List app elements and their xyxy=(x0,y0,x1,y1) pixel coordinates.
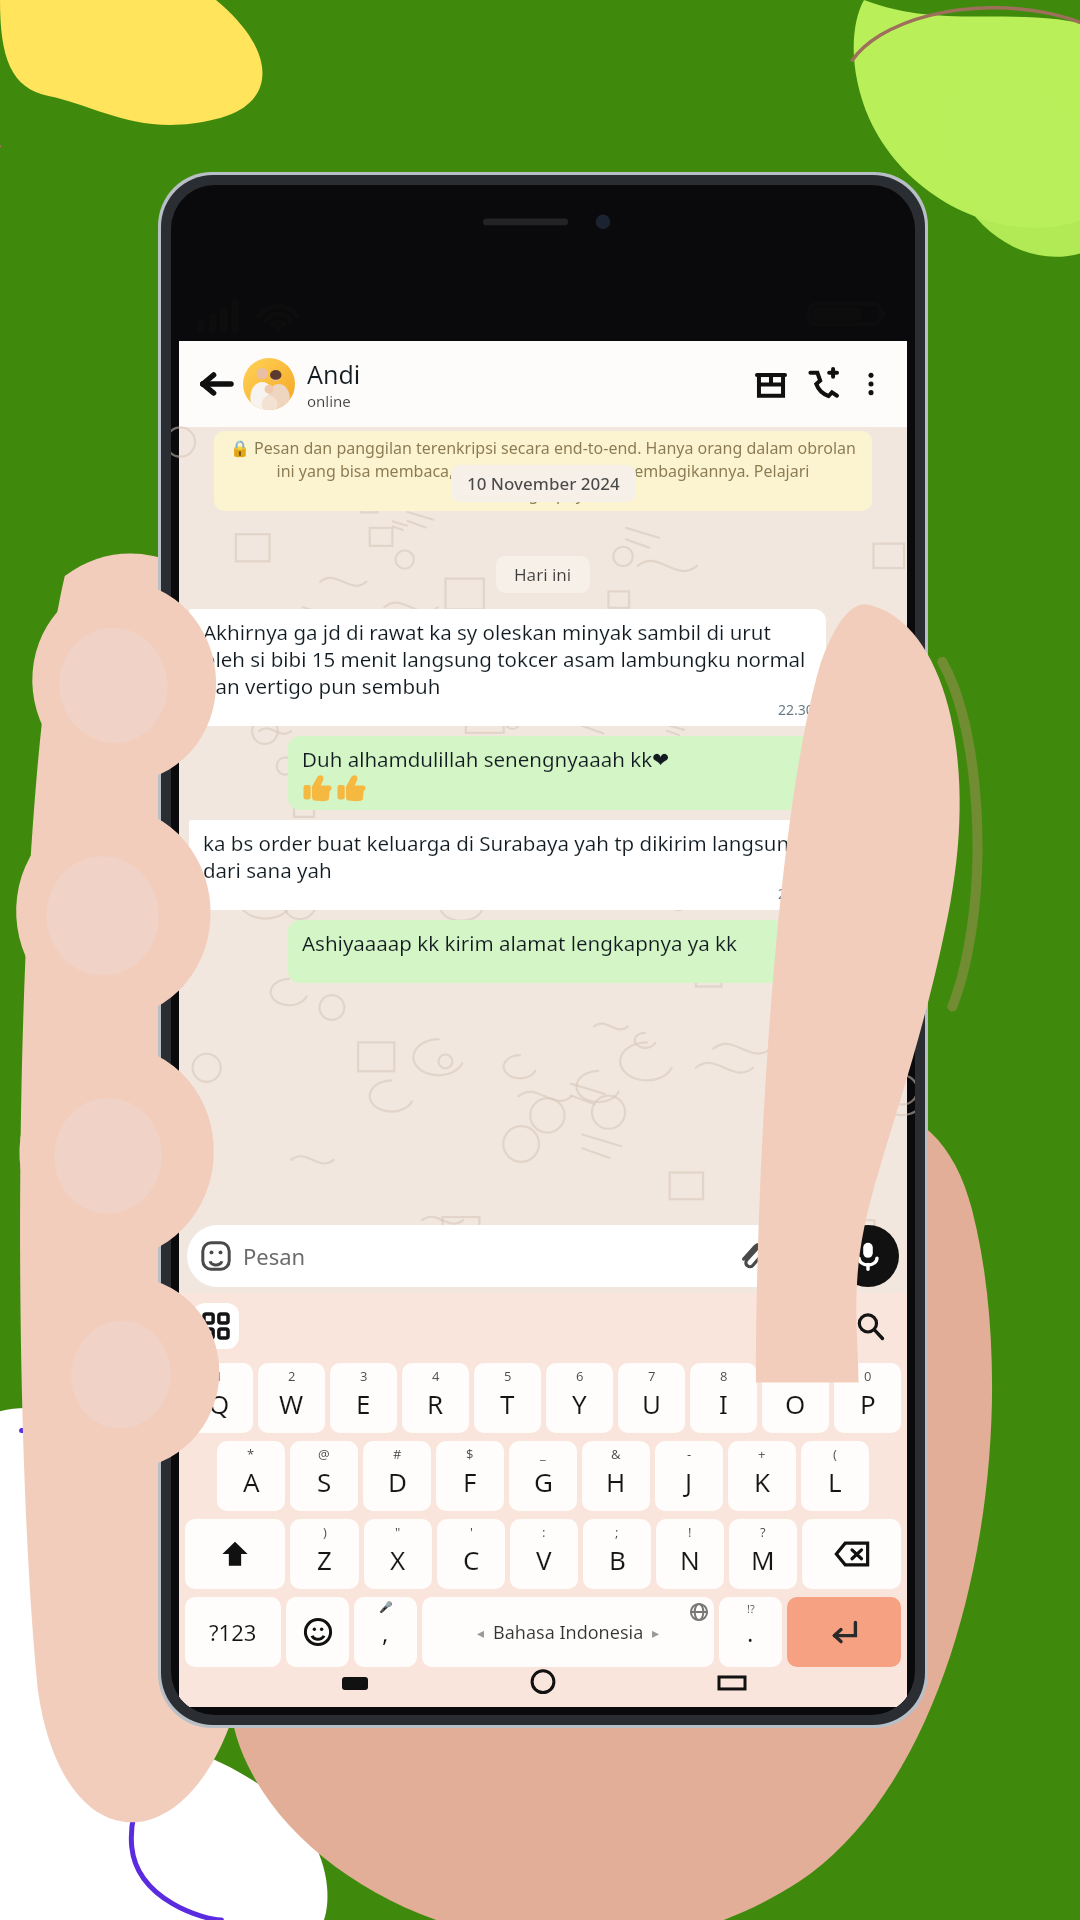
staticText: - xyxy=(687,1445,692,1463)
button[interactable]: Voice message xyxy=(837,1225,899,1287)
button[interactable]: 8 xyxy=(690,1363,757,1433)
button[interactable]: ; xyxy=(583,1519,651,1589)
staticText: 8 xyxy=(720,1367,728,1385)
staticText: F xyxy=(463,1464,477,1499)
staticText: 1 xyxy=(215,1367,223,1385)
staticText: Y xyxy=(572,1386,587,1421)
button[interactable]: ( xyxy=(801,1441,869,1511)
button[interactable]: Enter xyxy=(787,1597,901,1667)
staticText: ( xyxy=(833,1445,837,1463)
button[interactable]: 9 xyxy=(762,1363,829,1433)
staticText: L xyxy=(828,1464,842,1499)
button[interactable]: Pesan xyxy=(187,1225,829,1287)
staticText: H xyxy=(606,1464,626,1499)
staticText: W xyxy=(279,1386,304,1421)
staticText: D xyxy=(388,1464,407,1499)
button[interactable]: 0 xyxy=(834,1363,901,1433)
staticText: , xyxy=(382,1616,389,1649)
staticText: T xyxy=(500,1386,515,1421)
button[interactable]: Back xyxy=(193,361,239,407)
button[interactable]: Business catalog xyxy=(745,358,797,410)
staticText: 0 xyxy=(864,1367,872,1385)
button[interactable]: # xyxy=(363,1441,431,1511)
staticText: online xyxy=(307,391,351,411)
staticText: Akhirnya ga jd di rawat ka sy oleskan mi… xyxy=(203,618,814,700)
button[interactable]: ) xyxy=(290,1519,359,1589)
staticText: G xyxy=(534,1464,553,1499)
staticText: X xyxy=(390,1542,406,1577)
button[interactable] xyxy=(286,1597,349,1667)
button[interactable]: . xyxy=(719,1597,782,1667)
staticText: ◂ xyxy=(477,1625,485,1641)
button[interactable]: 6 xyxy=(546,1363,613,1433)
staticText: 10 November 2024 xyxy=(467,472,620,495)
staticText: ▸ xyxy=(652,1625,660,1641)
staticText: $ xyxy=(466,1445,474,1463)
staticText: 5 xyxy=(504,1367,512,1385)
staticText: 🔒 Pesan dan panggilan terenkripsi secara… xyxy=(228,437,858,505)
staticText: E xyxy=(356,1386,371,1421)
staticText: Hari ini xyxy=(514,563,572,586)
button[interactable]: Toolbar xyxy=(193,1303,239,1349)
button[interactable]: Akhirnya ga jd di rawat ka sy oleskan mi… xyxy=(189,609,826,726)
staticText: ; xyxy=(615,1523,619,1541)
button[interactable]: ?123 xyxy=(185,1597,281,1667)
button[interactable]: ! xyxy=(656,1519,724,1589)
button[interactable]: , xyxy=(354,1597,417,1667)
button[interactable]: : xyxy=(510,1519,578,1589)
staticText: O xyxy=(785,1386,806,1421)
staticText: Z xyxy=(317,1542,332,1577)
staticText: & xyxy=(611,1445,621,1463)
button[interactable]: Call xyxy=(797,358,849,410)
button[interactable]: 7 xyxy=(618,1363,685,1433)
staticText: M xyxy=(751,1542,775,1577)
button[interactable]: ? xyxy=(729,1519,797,1589)
button[interactable]: 1 xyxy=(185,1363,253,1433)
staticText: K xyxy=(754,1464,771,1499)
staticText: " xyxy=(395,1523,401,1541)
button[interactable]: + xyxy=(728,1441,796,1511)
staticText: 3 xyxy=(360,1367,368,1385)
staticText: Andi xyxy=(307,357,361,391)
button[interactable]: More options xyxy=(849,362,893,406)
staticText: Ashiyaaaap kk kirim alamat lengkapnya ya… xyxy=(302,929,737,957)
button[interactable]: 4 xyxy=(402,1363,469,1433)
button[interactable]: @ xyxy=(290,1441,358,1511)
button[interactable]: - xyxy=(655,1441,723,1511)
button[interactable]: ◂ xyxy=(422,1597,714,1667)
button[interactable]: 5 xyxy=(474,1363,541,1433)
button[interactable]: ' xyxy=(437,1519,505,1589)
staticText: A xyxy=(243,1464,260,1499)
button[interactable] xyxy=(185,1519,285,1589)
staticText: 4 xyxy=(432,1367,440,1385)
button[interactable]: Ashiyaaaap kk kirim alamat lengkapnya ya… xyxy=(288,920,897,983)
button[interactable]: " xyxy=(364,1519,432,1589)
staticText: ' xyxy=(470,1523,473,1541)
staticText: J xyxy=(685,1464,693,1499)
button[interactable] xyxy=(802,1519,901,1589)
staticText: ? xyxy=(760,1523,766,1541)
staticText: 2 xyxy=(288,1367,296,1385)
button[interactable]: _ xyxy=(509,1441,577,1511)
staticText: P xyxy=(860,1386,876,1421)
staticText: B xyxy=(609,1542,626,1577)
staticText: U xyxy=(642,1386,662,1421)
button[interactable]: * xyxy=(217,1441,285,1511)
button[interactable]: $ xyxy=(436,1441,504,1511)
staticText: . xyxy=(747,1616,754,1649)
button[interactable]: & xyxy=(582,1441,650,1511)
button[interactable]: Search xyxy=(847,1303,893,1349)
staticText: 22.30 xyxy=(778,700,814,719)
button[interactable]: Duh alhamdulillah senengnyaaah kk❤️ xyxy=(288,736,897,810)
staticText: Bahasa Indonesia xyxy=(493,1620,644,1645)
staticText: 6 xyxy=(576,1367,584,1385)
staticText: N xyxy=(680,1542,700,1577)
button[interactable]: 2 xyxy=(258,1363,325,1433)
button[interactable]: ka bs order buat keluarga di Surabaya ya… xyxy=(189,820,826,910)
staticText: !? xyxy=(747,1601,755,1616)
staticText: Pesan xyxy=(243,1241,737,1271)
button[interactable]: 3 xyxy=(330,1363,397,1433)
staticText: # xyxy=(393,1445,402,1463)
